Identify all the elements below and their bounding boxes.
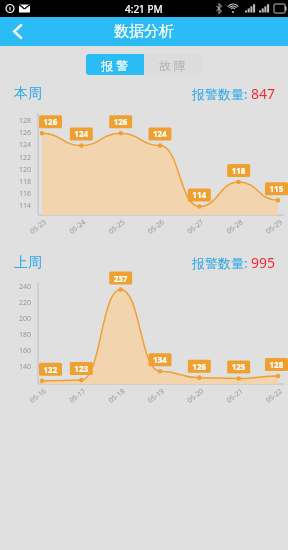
staticText: 数据分析	[114, 22, 174, 41]
staticText: 4:21 PM	[125, 2, 163, 16]
staticText: 上周	[14, 254, 42, 272]
staticText: 本周	[14, 85, 42, 103]
button[interactable]: 报 警	[86, 54, 144, 75]
staticText: 报警数量:	[192, 85, 251, 103]
staticText: 847	[251, 84, 276, 103]
staticText: 报警数量:	[192, 254, 251, 272]
staticText: 故 障	[159, 57, 187, 73]
staticText: 995	[251, 253, 276, 272]
button[interactable]: Back	[0, 17, 34, 46]
button[interactable]: 故 障	[144, 54, 202, 75]
staticText: 报 警	[101, 57, 129, 73]
